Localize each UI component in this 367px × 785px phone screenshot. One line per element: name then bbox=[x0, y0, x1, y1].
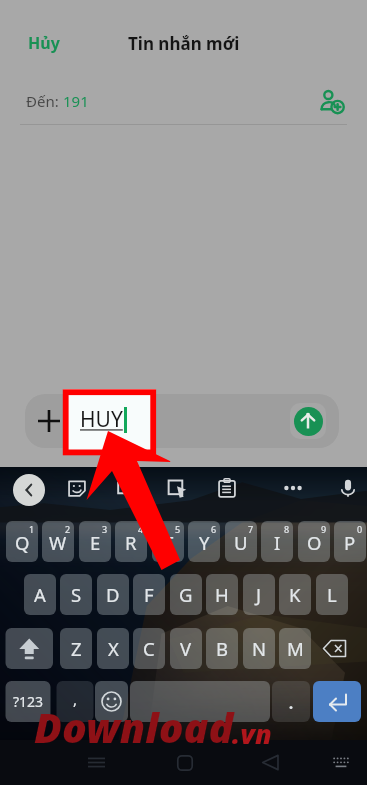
staticText: A bbox=[34, 582, 46, 607]
staticText: 5 bbox=[175, 523, 181, 535]
button[interactable]: F bbox=[133, 574, 165, 615]
staticText: 0 bbox=[357, 523, 363, 535]
button[interactable]: Hủy bbox=[16, 24, 72, 62]
button[interactable]: Add attachment bbox=[25, 394, 73, 448]
staticText: 7 bbox=[248, 523, 254, 535]
button[interactable]: More options bbox=[282, 477, 304, 499]
button[interactable]: D bbox=[97, 574, 129, 615]
button[interactable]: Home bbox=[172, 750, 197, 775]
button[interactable]: Stickers bbox=[66, 477, 88, 499]
button[interactable]: K bbox=[279, 574, 311, 615]
staticText: D bbox=[106, 582, 120, 607]
button[interactable]: 4 bbox=[115, 521, 147, 562]
button[interactable]: 9 bbox=[298, 521, 330, 562]
button[interactable]: , bbox=[57, 681, 94, 722]
staticText: ?123 bbox=[13, 692, 44, 711]
staticText: U bbox=[234, 530, 248, 555]
button[interactable]: Hide keyboard bbox=[329, 750, 353, 774]
staticText: Q bbox=[15, 530, 30, 555]
button[interactable]: 0 bbox=[334, 521, 366, 562]
button[interactable]: Add recipient bbox=[318, 88, 346, 116]
staticText: 3 bbox=[102, 523, 108, 535]
staticText: Đến: bbox=[26, 91, 63, 111]
staticText: P bbox=[344, 530, 356, 555]
staticText: C bbox=[143, 636, 155, 661]
button[interactable]: Back bbox=[258, 750, 283, 775]
button[interactable]: 7 bbox=[225, 521, 257, 562]
button[interactable]: X bbox=[97, 628, 129, 669]
staticText: 2 bbox=[65, 523, 71, 535]
staticText: , bbox=[73, 689, 78, 709]
button[interactable]: ?123 bbox=[6, 681, 51, 722]
staticText: M bbox=[287, 636, 304, 661]
staticText: O bbox=[307, 530, 322, 555]
button[interactable]: Clipboard bbox=[216, 477, 238, 499]
staticText: 8 bbox=[284, 523, 290, 535]
staticText: Z bbox=[71, 636, 82, 661]
button[interactable]: V bbox=[170, 628, 202, 669]
staticText: B bbox=[216, 636, 229, 661]
staticText: K bbox=[289, 582, 301, 607]
button[interactable]: Z bbox=[60, 628, 92, 669]
staticText: S bbox=[71, 582, 82, 607]
button[interactable]: J bbox=[243, 574, 275, 615]
staticText: HUY bbox=[80, 405, 123, 434]
staticText: Tin nhắn mới bbox=[128, 32, 240, 55]
staticText: N bbox=[252, 636, 267, 661]
staticText: V bbox=[180, 636, 192, 661]
button[interactable]: 6 bbox=[188, 521, 220, 562]
staticText: 6 bbox=[211, 523, 217, 535]
staticText: X bbox=[108, 636, 119, 661]
staticText: Download bbox=[34, 699, 234, 755]
button[interactable]: 3 bbox=[79, 521, 111, 562]
staticText: 191 bbox=[63, 91, 89, 111]
staticText: 9 bbox=[321, 523, 327, 535]
button[interactable]: 2 bbox=[42, 521, 74, 562]
staticText: Y bbox=[199, 530, 210, 555]
button[interactable]: N bbox=[243, 628, 275, 669]
button[interactable]: M bbox=[279, 628, 311, 669]
button[interactable]: C bbox=[133, 628, 165, 669]
staticText: J bbox=[256, 582, 262, 607]
staticText: T bbox=[163, 530, 174, 555]
staticText: .vn bbox=[232, 715, 272, 752]
button[interactable]: Back bbox=[13, 474, 45, 506]
button[interactable]: A bbox=[24, 574, 56, 615]
staticText: 1 bbox=[29, 523, 35, 535]
button[interactable]: Screenshot bbox=[166, 477, 188, 499]
staticText: G bbox=[179, 582, 193, 607]
staticText: F bbox=[144, 582, 154, 607]
button[interactable]: Recent apps bbox=[84, 750, 109, 775]
staticText: H bbox=[215, 582, 229, 607]
button[interactable]: Send message bbox=[290, 403, 326, 439]
button[interactable]: H bbox=[206, 574, 238, 615]
button[interactable]: 5 bbox=[152, 521, 184, 562]
button[interactable]: Voice input bbox=[337, 477, 359, 499]
button[interactable]: L bbox=[316, 574, 348, 615]
button[interactable]: B bbox=[206, 628, 238, 669]
staticText: W bbox=[49, 530, 67, 555]
staticText: E bbox=[90, 530, 101, 555]
staticText: R bbox=[125, 530, 137, 555]
button[interactable]: S bbox=[60, 574, 92, 615]
staticText: I bbox=[274, 530, 281, 555]
staticText: 4 bbox=[138, 523, 144, 535]
button[interactable]: 1 bbox=[6, 521, 38, 562]
button[interactable]: 8 bbox=[261, 521, 293, 562]
staticText: Hủy bbox=[28, 32, 60, 54]
button[interactable]: GIF bbox=[116, 477, 138, 499]
staticText: L bbox=[327, 582, 337, 607]
button[interactable]: G bbox=[170, 574, 202, 615]
